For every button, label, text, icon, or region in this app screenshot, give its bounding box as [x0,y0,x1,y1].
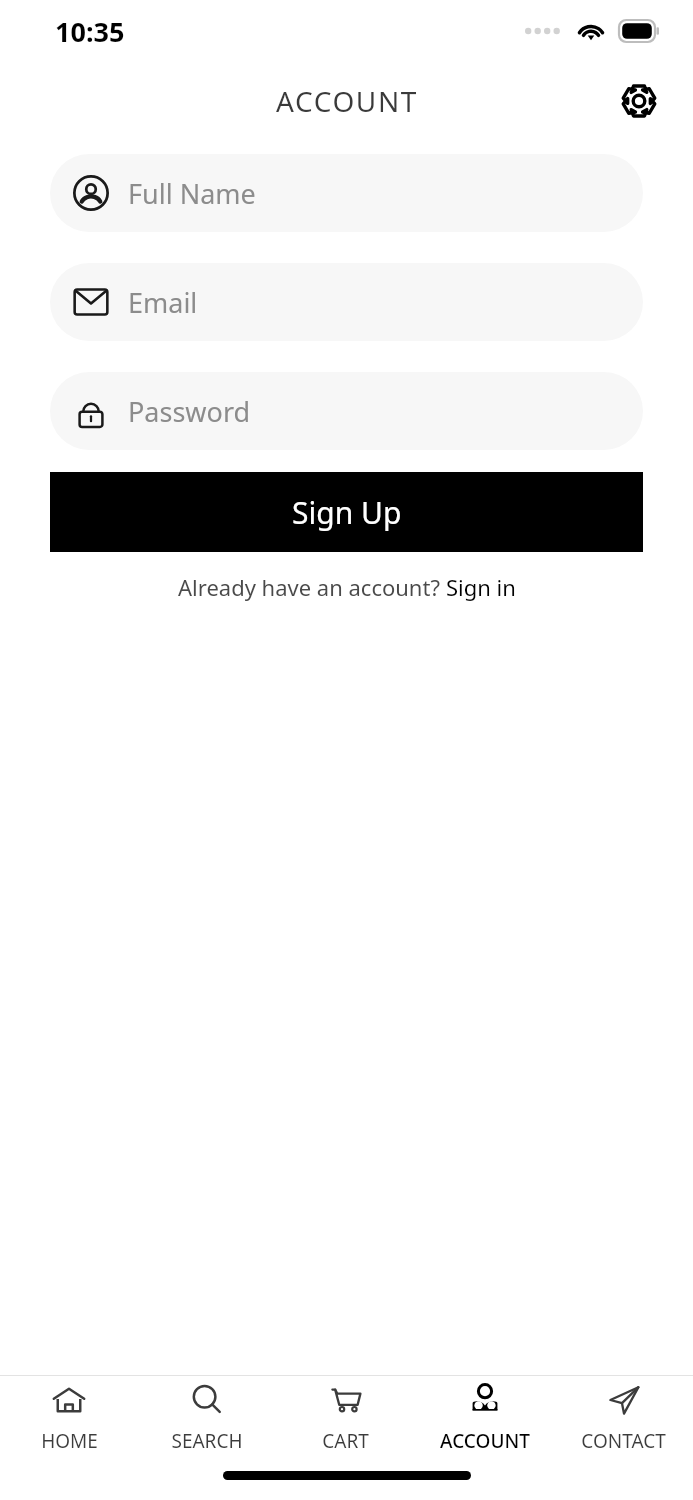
staticText: CONTACT [581,1428,666,1452]
staticText: Full Name [128,175,256,212]
button[interactable]: Password [50,372,643,450]
button[interactable]: Email [50,263,643,341]
staticText: Password [128,393,251,430]
button[interactable]: Full Name [50,154,643,232]
staticText: Sign Up [292,492,402,533]
staticText: ACCOUNT [440,1428,530,1452]
button[interactable]: Sign Up [50,472,643,552]
button[interactable]: ACCOUNT [415,1376,554,1456]
button[interactable]: SEARCH [138,1376,276,1456]
staticText: Email [128,284,198,321]
staticText: HOME [41,1428,98,1452]
staticText: ACCOUNT [276,82,418,120]
button[interactable]: Settings [613,75,665,127]
button[interactable]: Sign in [446,572,516,602]
staticText: CART [322,1428,369,1452]
button[interactable]: CONTACT [554,1376,693,1456]
staticText: 10:35 [55,13,125,50]
staticText: SEARCH [171,1428,243,1452]
staticText: Sign in [446,572,516,602]
staticText: Already have an account? [178,572,446,602]
button[interactable]: HOME [0,1376,138,1456]
button[interactable]: CART [276,1376,415,1456]
